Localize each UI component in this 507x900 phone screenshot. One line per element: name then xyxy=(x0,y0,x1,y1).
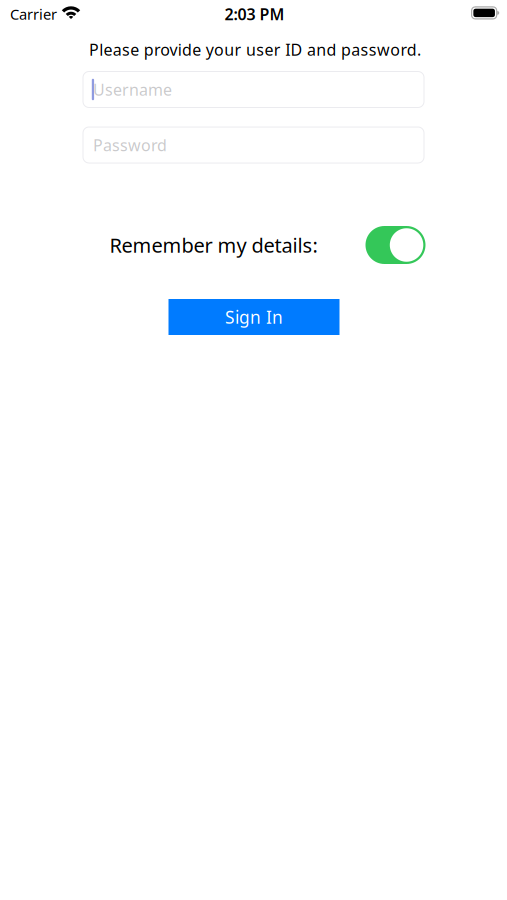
staticText: Password xyxy=(93,134,167,156)
button[interactable]: Sign In xyxy=(168,299,339,335)
button[interactable]: Remember my details xyxy=(365,226,425,264)
staticText: Carrier xyxy=(10,4,57,24)
staticText: Please provide your user ID and password… xyxy=(89,39,421,60)
button[interactable]: Username xyxy=(83,71,424,107)
button[interactable]: Password xyxy=(83,127,424,163)
staticText: Username xyxy=(93,79,172,100)
staticText: Sign In xyxy=(225,305,283,328)
staticText: 2:03 PM xyxy=(224,3,284,25)
staticText: Remember my details: xyxy=(109,232,317,258)
